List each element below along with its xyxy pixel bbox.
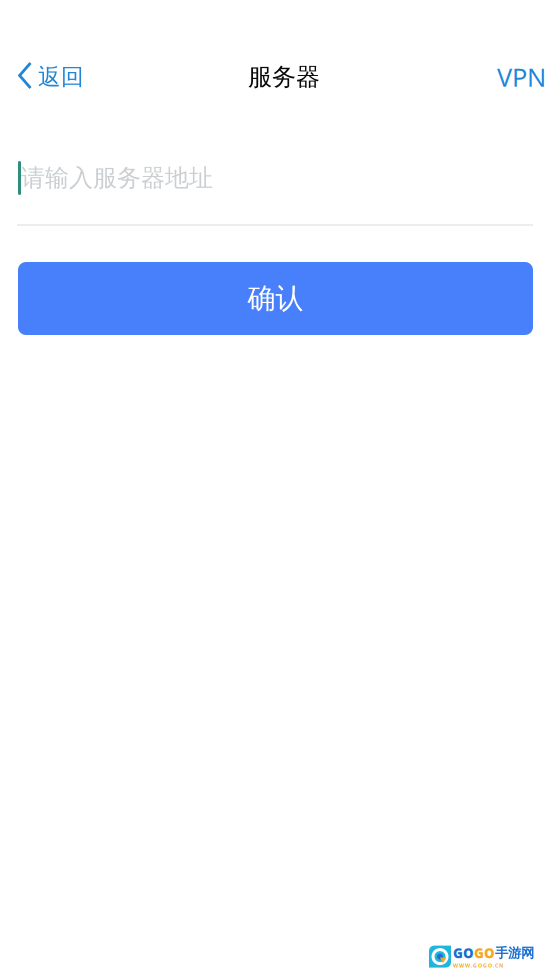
staticText: GO: [453, 944, 474, 962]
staticText: VPN: [497, 60, 546, 94]
staticText: 服务器: [248, 62, 320, 92]
button[interactable]: 确认: [18, 262, 533, 335]
staticText: 手游网: [495, 945, 534, 961]
staticText: W W W . G O G O . C N: [453, 962, 503, 969]
staticText: 请输入服务器地址: [21, 163, 213, 193]
staticText: GO: [474, 944, 495, 962]
button[interactable]: 请输入服务器地址: [0, 161, 551, 195]
button[interactable]: VPN: [485, 55, 551, 99]
button[interactable]: 返回: [0, 55, 96, 99]
staticText: 返回: [38, 63, 84, 91]
staticText: 确认: [247, 281, 303, 316]
